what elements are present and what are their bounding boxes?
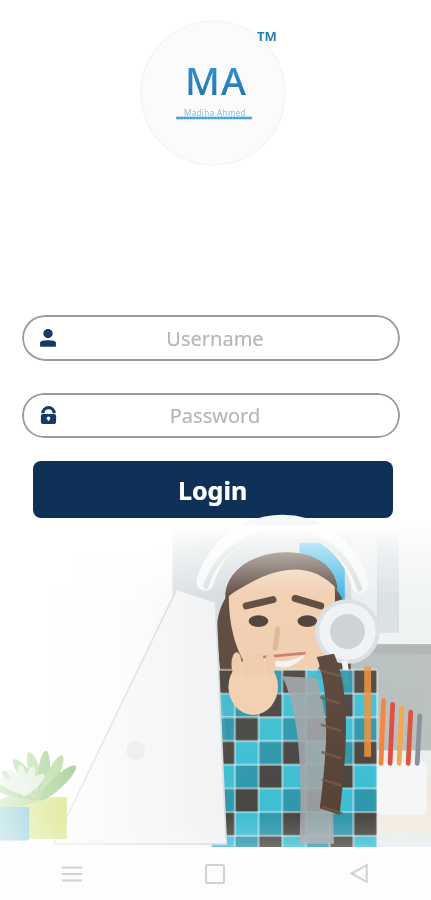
button[interactable]: Login — [33, 461, 393, 518]
staticText: Password — [60, 402, 370, 429]
staticText: MA — [185, 54, 247, 106]
staticText: Username — [60, 325, 370, 352]
button[interactable]: Home — [143, 847, 287, 900]
staticText: Login — [178, 473, 248, 507]
staticText: Madiha Ahmed — [184, 107, 247, 118]
button[interactable]: Back — [287, 847, 431, 900]
staticText: TM — [257, 27, 277, 45]
button[interactable]: Username — [22, 315, 400, 361]
button[interactable]: Recent apps — [0, 847, 143, 900]
button[interactable]: Password — [22, 393, 400, 438]
